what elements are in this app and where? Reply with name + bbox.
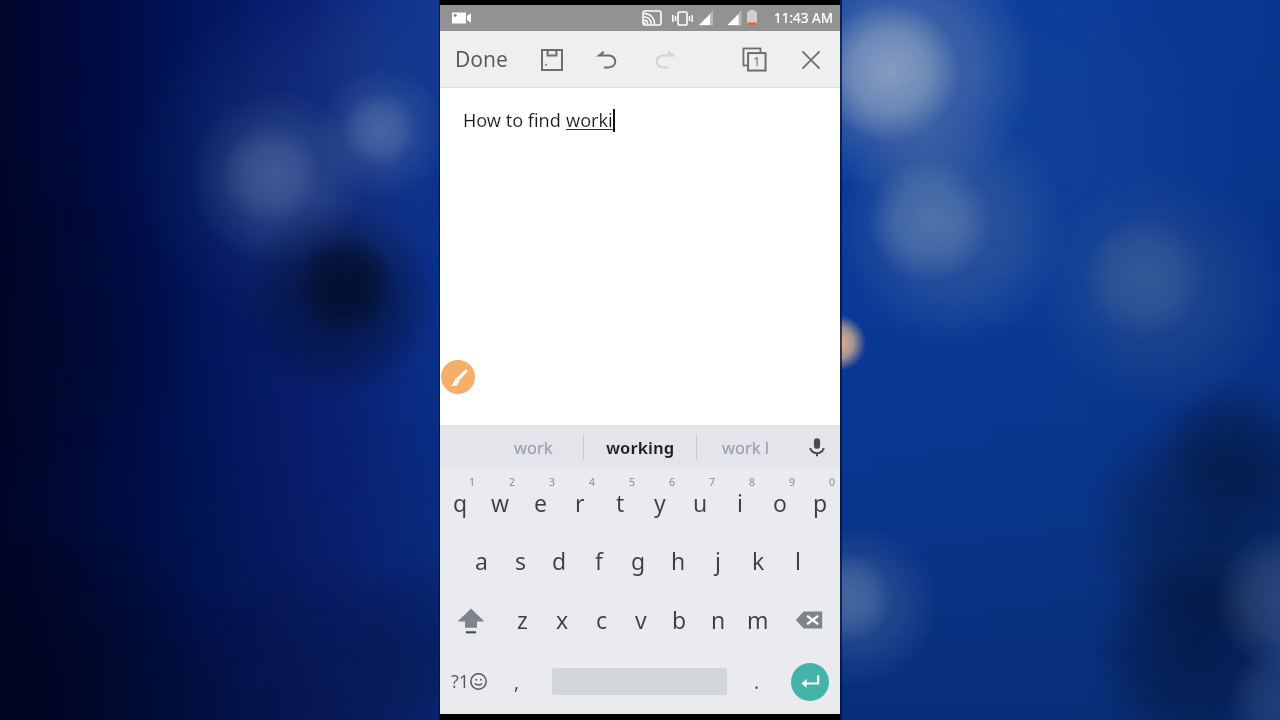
staticText: 2 (509, 475, 516, 489)
staticText: g (631, 545, 646, 576)
button[interactable]: c (582, 590, 621, 649)
staticText: z (517, 604, 528, 635)
button[interactable]: h (658, 531, 698, 590)
button[interactable]: Pages (737, 31, 772, 88)
button[interactable]: work l (697, 425, 795, 468)
staticText: work (514, 436, 553, 458)
staticText: r (575, 487, 585, 518)
staticText: o (773, 487, 787, 518)
staticText: working (606, 436, 675, 458)
button[interactable]: Brush (441, 360, 475, 394)
staticText: work l (722, 436, 770, 458)
staticText: 4 (589, 475, 596, 489)
staticText: x (556, 604, 569, 635)
staticText: 3 (549, 475, 556, 489)
staticText: ?1 (451, 669, 470, 694)
button[interactable]: Done (440, 31, 514, 88)
button[interactable]: Comma (498, 649, 536, 714)
staticText: 1 (469, 475, 476, 489)
button[interactable]: w (480, 472, 520, 531)
button[interactable]: d (540, 531, 579, 590)
button[interactable]: a (462, 531, 501, 590)
staticText: p (813, 487, 828, 518)
staticText: . (754, 669, 760, 695)
button[interactable]: b (660, 590, 699, 649)
staticText: k (752, 545, 765, 576)
button[interactable]: Shift (440, 590, 502, 649)
staticText: , (514, 669, 520, 695)
staticText: 9 (789, 475, 796, 489)
staticText: 1 (753, 52, 761, 70)
button[interactable]: Period (727, 649, 787, 714)
staticText: 11:43 AM (774, 9, 833, 27)
staticText: t (616, 487, 625, 518)
staticText: e (534, 487, 547, 518)
staticText: 0 (829, 475, 836, 489)
button[interactable]: t (600, 472, 640, 531)
staticText: 8 (749, 475, 756, 489)
button[interactable]: j (698, 531, 738, 590)
staticText: w (491, 487, 510, 518)
staticText: worki (566, 108, 613, 133)
button[interactable]: l (778, 531, 818, 590)
button[interactable]: Save (535, 31, 569, 88)
staticText: n (711, 604, 726, 635)
button[interactable]: p (800, 472, 840, 531)
staticText: u (693, 487, 708, 518)
staticText: 7 (709, 475, 716, 489)
button[interactable]: i (720, 472, 760, 531)
staticText: m (747, 604, 769, 635)
button[interactable]: y (640, 472, 680, 531)
button[interactable]: z (502, 590, 542, 649)
staticText: How to find (463, 108, 566, 133)
button[interactable]: o (760, 472, 800, 531)
button[interactable]: Backspace (777, 590, 840, 649)
staticText: y (654, 487, 666, 518)
button[interactable]: f (579, 531, 618, 590)
staticText: a (475, 545, 488, 576)
button[interactable]: Enter (791, 663, 829, 701)
staticText: j (715, 545, 721, 576)
staticText: f (595, 545, 603, 576)
button[interactable]: Undo (591, 31, 626, 88)
staticText: q (453, 487, 468, 518)
button[interactable]: x (542, 590, 582, 649)
button[interactable]: e (520, 472, 560, 531)
button[interactable]: m (738, 590, 777, 649)
button[interactable]: Close (794, 31, 828, 88)
staticText: i (737, 487, 743, 518)
button[interactable]: n (699, 590, 738, 649)
staticText: v (635, 604, 647, 635)
button[interactable]: work (440, 425, 583, 468)
staticText: 5 (629, 475, 636, 489)
staticText: c (596, 604, 608, 635)
button[interactable]: g (618, 531, 658, 590)
button[interactable]: q (440, 472, 480, 531)
button[interactable]: u (680, 472, 720, 531)
staticText: l (795, 545, 801, 576)
button[interactable]: working (584, 425, 696, 468)
button[interactable]: r (560, 472, 600, 531)
staticText: b (672, 604, 687, 635)
button[interactable]: Voice input (795, 425, 840, 468)
button[interactable]: Symbols and emoji (440, 649, 498, 714)
button[interactable]: s (501, 531, 540, 590)
button[interactable]: Redo (646, 31, 681, 88)
button[interactable]: v (621, 590, 660, 649)
staticText: Done (455, 45, 508, 74)
staticText: s (515, 545, 527, 576)
staticText: 6 (669, 475, 676, 489)
staticText: h (671, 545, 686, 576)
staticText: d (552, 545, 567, 576)
button[interactable]: k (738, 531, 778, 590)
